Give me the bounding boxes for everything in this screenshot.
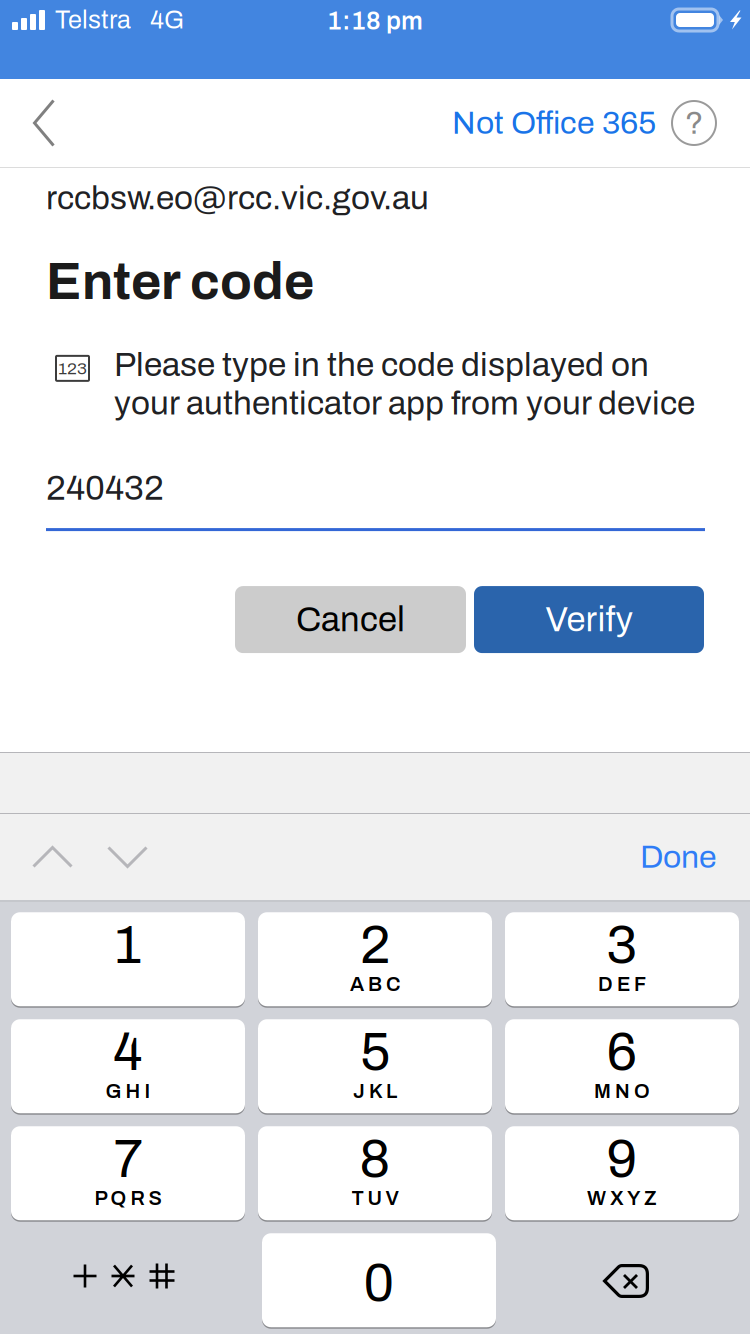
staticText: 4 xyxy=(113,1023,143,1081)
button[interactable]: Cancel xyxy=(235,586,466,653)
button[interactable]: Verify xyxy=(474,586,704,653)
staticText: your authenticator app from your device xyxy=(114,385,695,421)
staticText: 4G xyxy=(150,6,184,34)
staticText: 0 xyxy=(363,1254,394,1312)
button[interactable]: 1 xyxy=(11,913,245,1007)
staticText: 1 xyxy=(114,916,142,974)
staticText: Done xyxy=(640,840,717,874)
staticText: 9 xyxy=(606,1130,637,1188)
staticText: P Q R S xyxy=(94,1187,161,1209)
staticText: 2 xyxy=(360,916,390,974)
staticText: 123 xyxy=(58,359,87,378)
button[interactable]: 6 xyxy=(505,1020,739,1114)
staticText: 1:18 pm xyxy=(327,7,423,35)
button[interactable]: 4 xyxy=(11,1020,245,1114)
button[interactable]: Back xyxy=(0,79,88,167)
button[interactable]: Next field xyxy=(96,814,171,900)
staticText: rccbsw.eo@rcc.vic.gov.au xyxy=(46,180,429,216)
staticText: 6 xyxy=(606,1023,637,1081)
button[interactable]: Delete xyxy=(509,1234,743,1328)
button[interactable]: 3 xyxy=(505,913,739,1007)
button[interactable]: 7 xyxy=(11,1127,245,1221)
staticText: M N O xyxy=(594,1080,650,1102)
staticText: 8 xyxy=(359,1130,390,1188)
button[interactable]: 8 xyxy=(258,1127,492,1221)
button[interactable]: Help xyxy=(656,79,750,167)
staticText: 7 xyxy=(113,1130,142,1188)
staticText: Not Office 365 xyxy=(452,106,656,140)
staticText: ? xyxy=(685,106,703,140)
staticText: 3 xyxy=(606,916,637,974)
button[interactable]: 2 xyxy=(258,913,492,1007)
staticText: G H I xyxy=(105,1080,150,1102)
button[interactable]: Not Office 365 xyxy=(452,79,656,167)
staticText: T U V xyxy=(351,1187,398,1209)
staticText: Telstra xyxy=(55,6,131,34)
staticText: A B C xyxy=(350,973,400,995)
button[interactable]: 5 xyxy=(258,1020,492,1114)
button[interactable]: Previous field xyxy=(0,814,96,900)
staticText: 240432 xyxy=(46,469,164,507)
staticText: Cancel xyxy=(296,601,405,638)
staticText: D E F xyxy=(598,973,646,995)
staticText: 5 xyxy=(360,1023,390,1081)
staticText: Enter code xyxy=(46,253,314,310)
button[interactable]: Done xyxy=(620,814,750,900)
staticText: Verify xyxy=(545,601,632,638)
button[interactable]: 9 xyxy=(505,1127,739,1221)
staticText: W X Y Z xyxy=(587,1187,657,1209)
button[interactable]: Symbols xyxy=(7,1234,249,1328)
button[interactable]: 0 xyxy=(262,1234,496,1328)
staticText: J K L xyxy=(353,1080,397,1102)
staticText: Please type in the code displayed on xyxy=(114,347,649,383)
